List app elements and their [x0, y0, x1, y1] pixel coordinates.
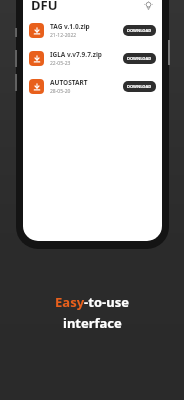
button[interactable]: Hint: [141, 0, 155, 12]
button[interactable]: DOWNLOAD: [123, 81, 156, 92]
staticText: 28-05-20: [50, 88, 71, 95]
staticText: DOWNLOAD: [127, 56, 152, 61]
button[interactable]: TAG v.1.0.zip: [23, 16, 162, 44]
button[interactable]: AUTOSTART v.v1.1.0.zip: [23, 72, 162, 100]
staticText: DOWNLOAD: [127, 28, 152, 33]
staticText: DOWNLOAD: [127, 84, 152, 89]
button[interactable]: IGLA v.v7.9.7.zip: [23, 44, 162, 72]
staticText: DFU: [31, 0, 58, 14]
staticText: Easy-to-use: [55, 293, 129, 311]
staticText: 21-12-2022: [50, 32, 77, 39]
staticText: 22-05-23: [50, 60, 71, 67]
staticText: TAG v.1.0.zip: [50, 22, 90, 31]
staticText: interface: [63, 314, 122, 332]
staticText: IGLA v.v7.9.7.zip: [50, 50, 102, 59]
staticText: AUTOSTART v.v1.1.0.zip: [50, 78, 120, 87]
button[interactable]: DOWNLOAD: [123, 53, 156, 64]
button[interactable]: DOWNLOAD: [123, 25, 156, 36]
